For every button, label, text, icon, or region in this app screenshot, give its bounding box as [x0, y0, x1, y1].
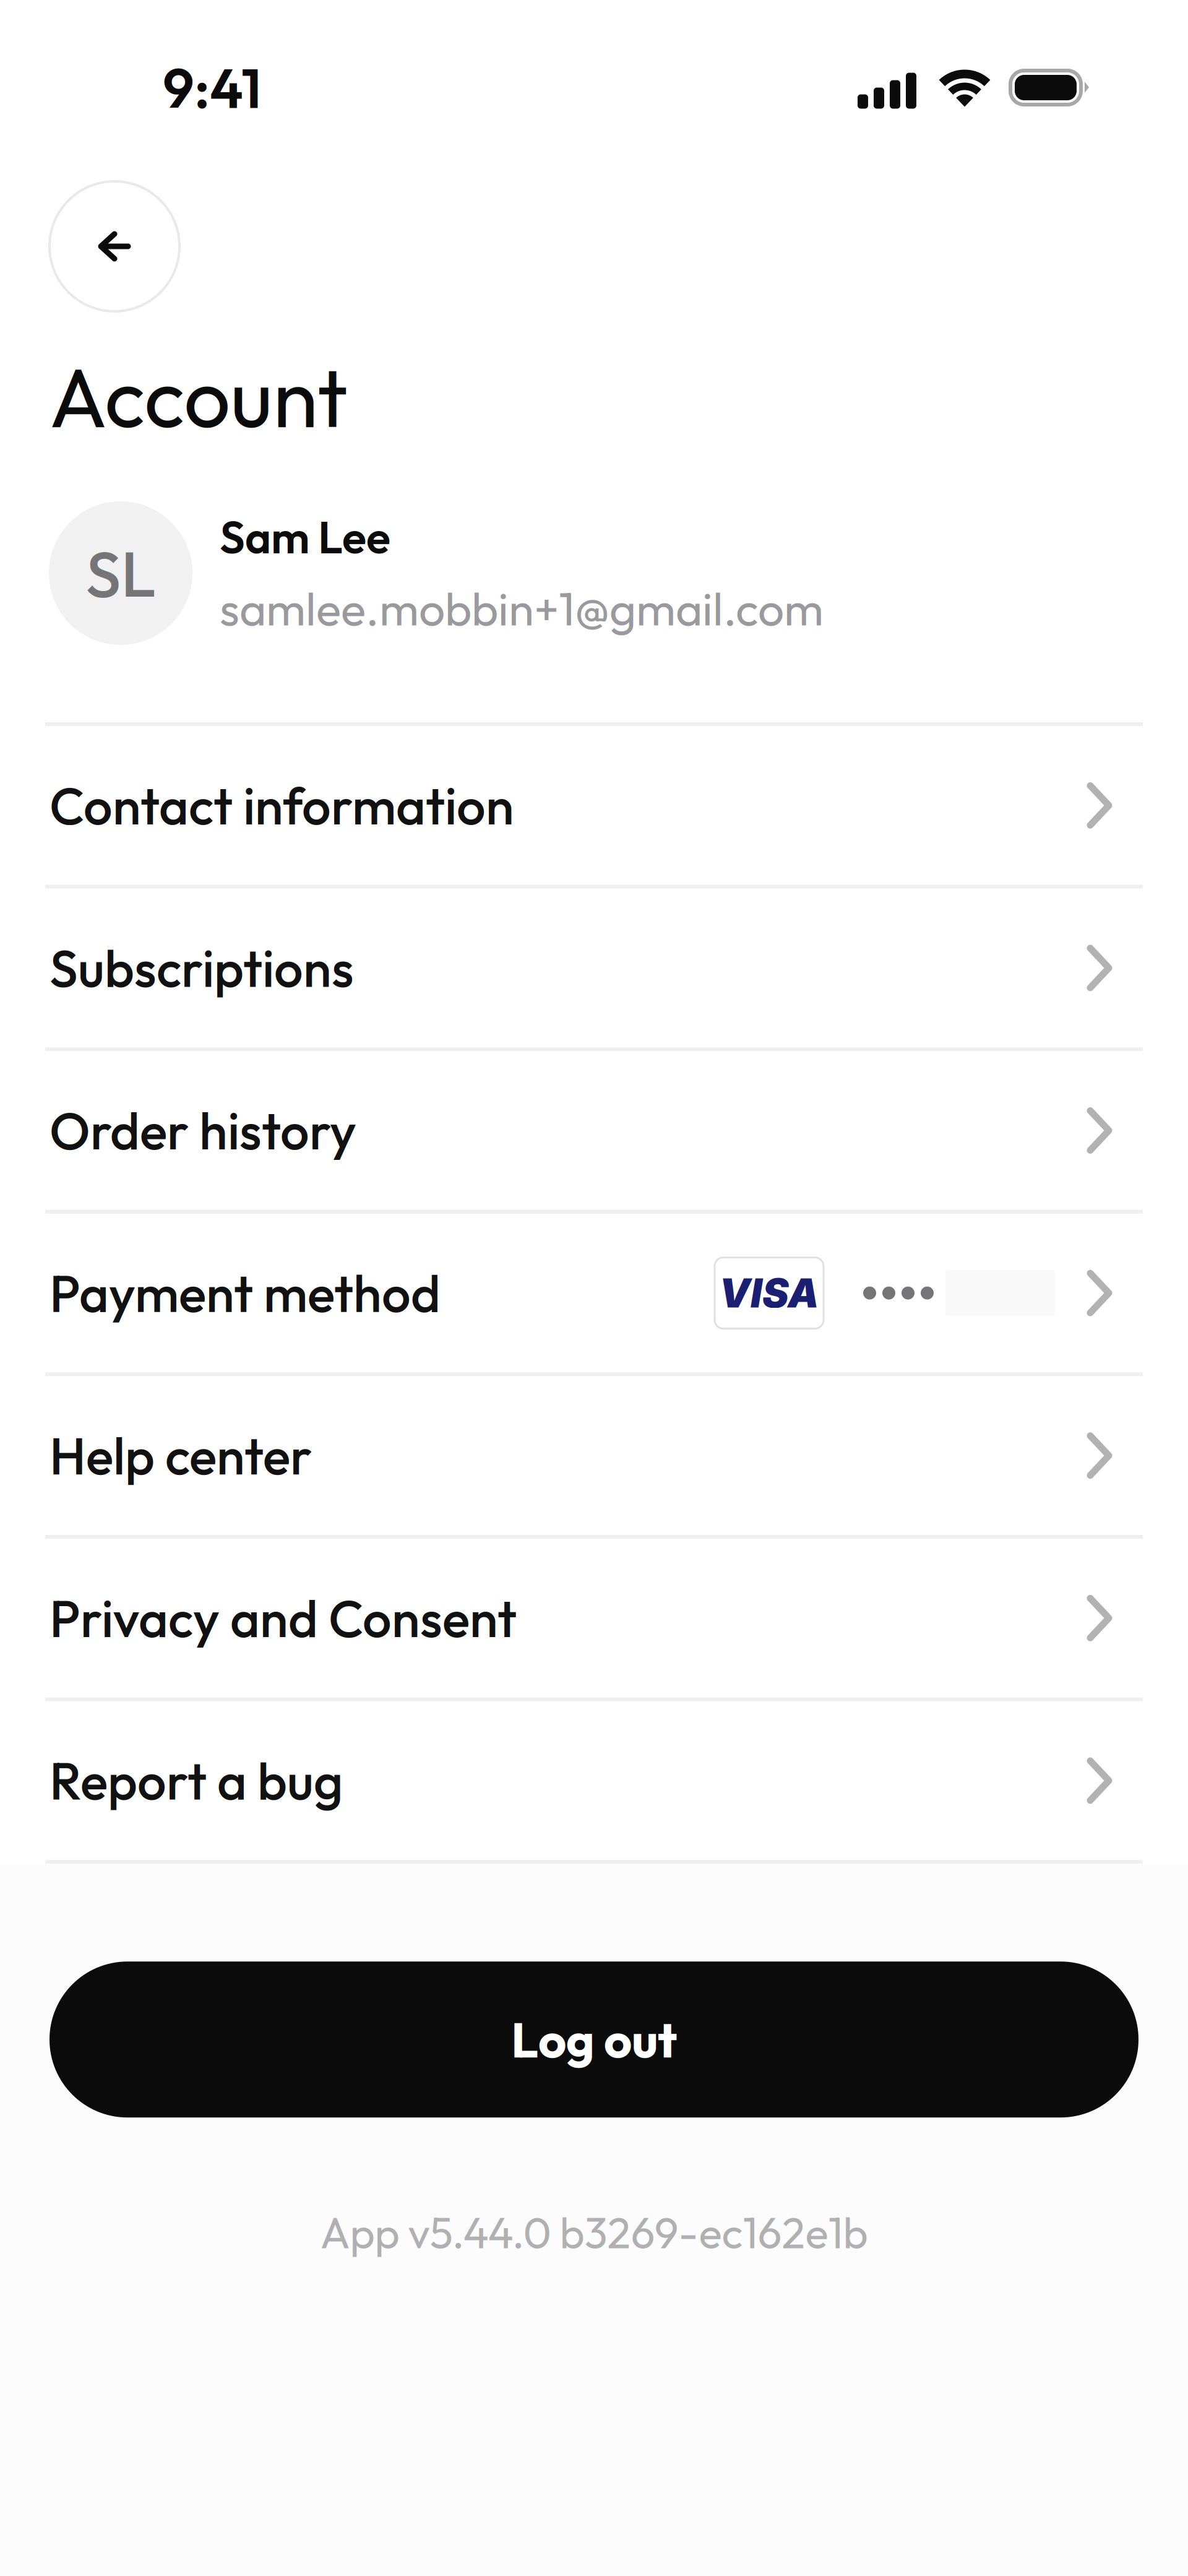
staticText: samlee.mobbin+1@gmail.com: [220, 579, 824, 637]
button[interactable]: Subscriptions: [0, 889, 1188, 1047]
button[interactable]: Contact information: [0, 726, 1188, 885]
button[interactable]: Back: [49, 181, 179, 311]
staticText: SL: [86, 533, 156, 613]
staticText: Subscriptions: [49, 936, 354, 1000]
button[interactable]: Order history: [0, 1051, 1188, 1210]
staticText: Report a bug: [49, 1748, 343, 1813]
staticText: Contact information: [49, 773, 514, 838]
button[interactable]: Privacy and Consent: [0, 1539, 1188, 1697]
staticText: Sam Lee: [220, 509, 390, 565]
staticText: Log out: [511, 2009, 677, 2070]
staticText: Account: [49, 345, 348, 449]
button[interactable]: Report a bug: [0, 1701, 1188, 1860]
staticText: App v5.44.0 b3269-ec162e1b: [320, 2205, 868, 2259]
staticText: 9:41: [163, 53, 262, 122]
staticText: VISA: [719, 1269, 819, 1317]
button[interactable]: Payment method: [0, 1214, 1188, 1372]
staticText: Payment method: [49, 1261, 441, 1325]
staticText: Help center: [49, 1423, 312, 1488]
staticText: Order history: [49, 1098, 356, 1163]
staticText: Privacy and Consent: [49, 1586, 517, 1650]
button[interactable]: Log out: [49, 1962, 1138, 2117]
button[interactable]: Help center: [0, 1376, 1188, 1535]
